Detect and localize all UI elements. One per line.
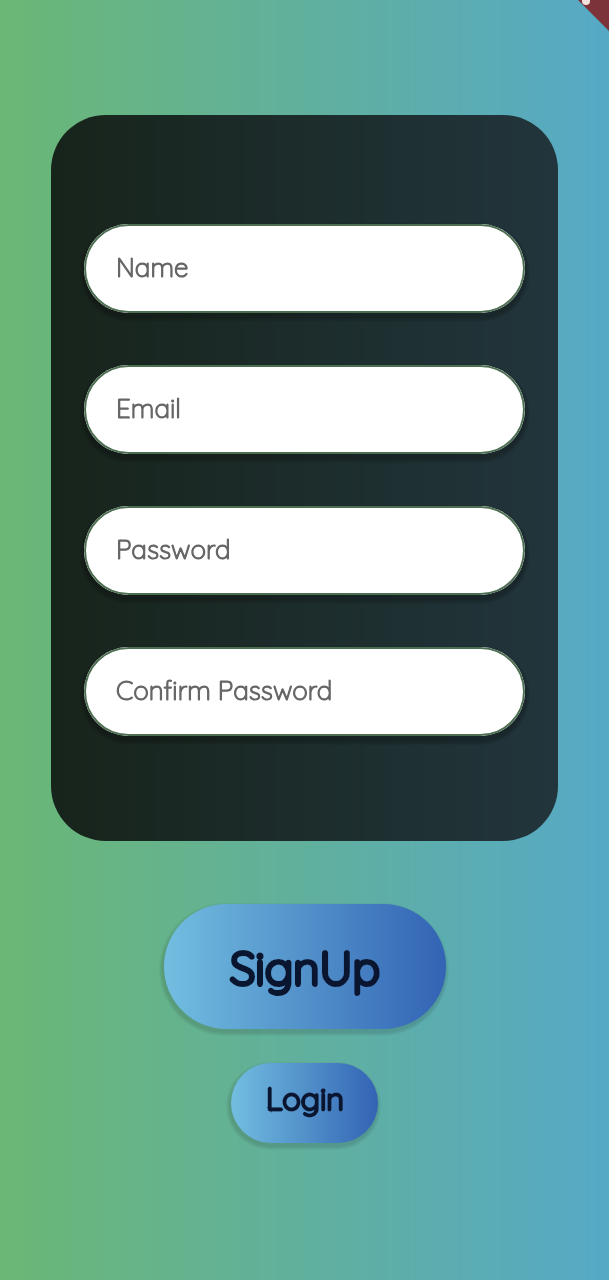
button[interactable]: Login [231, 1063, 378, 1143]
staticText: Email [116, 392, 181, 425]
staticText: Confirm Password [116, 674, 333, 707]
staticText: SignUp [230, 939, 381, 997]
staticText: Name [116, 251, 189, 284]
staticText: SignUp [230, 939, 381, 997]
staticText: Password [116, 533, 231, 566]
staticText: Email [116, 392, 181, 425]
staticText: Name [116, 251, 189, 284]
button[interactable]: SignUp [164, 904, 446, 1029]
staticText: Login [266, 1079, 344, 1118]
button[interactable]: Name [84, 224, 525, 313]
staticText: Confirm Password [116, 674, 333, 707]
staticText: Login [266, 1079, 344, 1118]
button[interactable]: Email [84, 365, 525, 454]
button[interactable]: Confirm Password [84, 647, 525, 736]
button[interactable]: Password [84, 506, 525, 595]
staticText: Password [116, 533, 231, 566]
